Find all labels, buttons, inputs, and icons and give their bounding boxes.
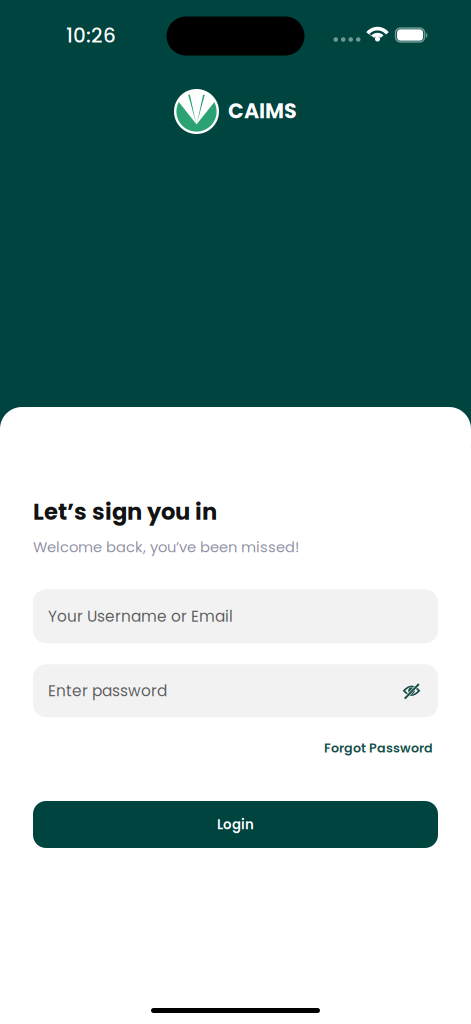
staticText: Your Username or Email [48,605,233,627]
button[interactable]: Your Username or Email [33,589,438,643]
button[interactable]: Forgot Password [324,736,438,760]
staticText: Login [217,815,254,834]
button[interactable]: Enter password [33,664,438,717]
staticText: CAIMS [228,96,297,125]
staticText: Forgot Password [324,739,433,757]
button[interactable]: Login [33,801,438,848]
staticText: Welcome back, you’ve been missed! [33,537,299,557]
staticText: 10:26 [66,21,116,49]
staticText: Enter password [48,680,167,701]
staticText: Let’s sign you in [33,496,217,528]
